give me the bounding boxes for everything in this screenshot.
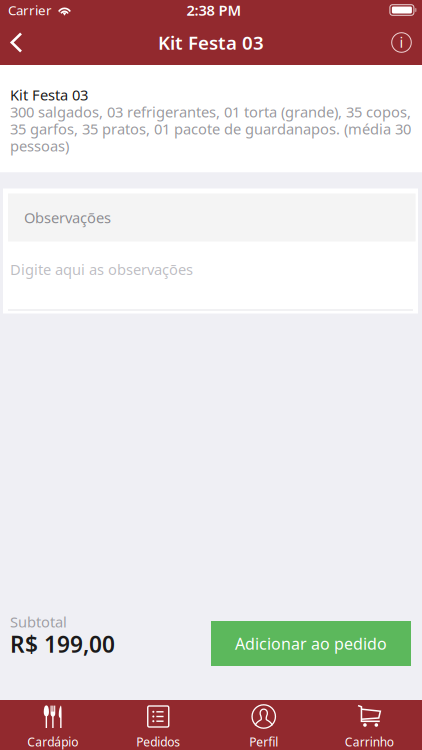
- staticText: Carrier: [8, 1, 52, 19]
- staticText: Perfil: [249, 734, 278, 750]
- staticText: Observações: [24, 208, 111, 227]
- staticText: pessoas): [10, 136, 69, 155]
- staticText: Cardápio: [27, 734, 78, 750]
- staticText: Kit Festa 03: [10, 85, 88, 104]
- button[interactable]: Back: [0, 20, 38, 65]
- staticText: 2:38 PM: [186, 0, 241, 20]
- staticText: Pedidos: [136, 734, 180, 750]
- staticText: Digite aqui as observações: [10, 259, 193, 279]
- staticText: Kit Festa 03: [158, 30, 264, 55]
- staticText: Adicionar ao pedido: [235, 633, 387, 654]
- button[interactable]: Adicionar ao pedido: [211, 621, 411, 666]
- staticText: 35 garfos, 35 pratos, 01 pacote de guard…: [10, 119, 411, 138]
- button[interactable]: Perfil: [211, 700, 316, 750]
- button[interactable]: Carrinho: [316, 700, 422, 750]
- button[interactable]: Pedidos: [105, 700, 211, 750]
- button[interactable]: Info: [375, 20, 422, 65]
- staticText: Carrinho: [345, 734, 394, 750]
- staticText: 300 salgados, 03 refrigerantes, 01 torta…: [10, 102, 411, 121]
- staticText: Subtotal: [10, 612, 67, 631]
- staticText: R$ 199,00: [10, 629, 115, 659]
- staticText: i: [399, 32, 403, 52]
- button[interactable]: Cardápio: [0, 700, 105, 750]
